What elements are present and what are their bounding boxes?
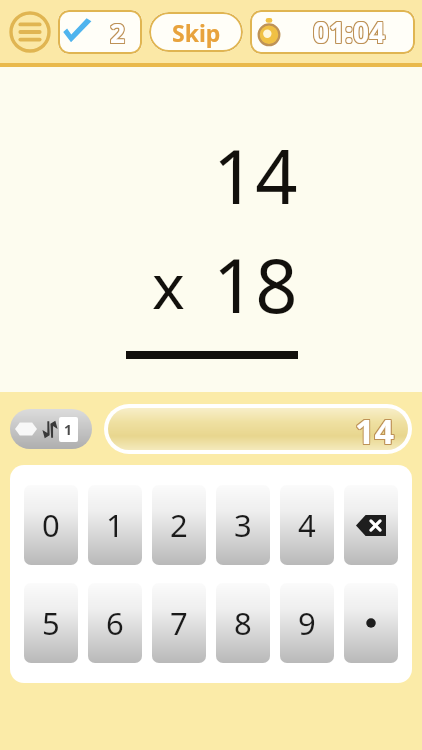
button[interactable]: 2 [58,10,142,54]
staticText: 14 [355,409,394,450]
button[interactable]: 4 [280,485,334,565]
button[interactable]: 7 [152,583,206,663]
staticText: 4 [298,504,316,546]
button[interactable]: 01:04 [250,10,415,54]
staticText: 14 [356,408,395,450]
staticText: 01:04 [313,12,385,50]
button[interactable]: Menu [7,9,53,55]
button[interactable]: 1 [88,485,142,565]
staticText: 1 [64,420,73,439]
button[interactable]: 6 [88,583,142,663]
staticText: 7 [170,602,188,644]
staticText: 2 [109,16,124,51]
staticText: 5 [42,602,60,644]
staticText: 14 [354,408,393,450]
staticText: 2 [110,14,125,49]
staticText: 2 [170,504,188,546]
staticText: 18 [213,234,298,335]
button[interactable]: 5 [24,583,78,663]
button[interactable]: 14 [108,408,408,450]
staticText: 01:04 [312,14,384,52]
staticText: 01:04 [313,13,385,51]
staticText: x [152,243,185,327]
staticText: 2 [111,15,126,50]
staticText: 2 [110,15,125,50]
staticText: 01:04 [314,13,386,51]
staticText: 8 [234,602,252,644]
staticText: 14 [213,125,298,226]
staticText: 2 [111,14,126,49]
staticText: 2 [109,14,124,49]
staticText: 01:04 [314,12,386,50]
staticText: 2 [109,15,124,50]
button[interactable]: Swap input mode [10,409,92,449]
staticText: 14 [355,408,394,450]
button[interactable]: 8 [216,583,270,663]
staticText: 01:04 [312,12,384,50]
staticText: 14 [354,408,393,449]
staticText: 0 [42,504,60,546]
button[interactable]: 2 [152,485,206,565]
staticText: 14 [356,409,395,450]
staticText: 14 [355,408,394,449]
staticText: 3 [234,504,252,546]
staticText: 9 [298,602,316,644]
staticText: 01:04 [312,13,384,51]
staticText: 14 [354,409,393,450]
staticText: 2 [111,16,126,51]
staticText: 1 [106,504,124,546]
staticText: 14 [356,408,395,449]
staticText: 2 [110,16,125,51]
button[interactable]: 3 [216,485,270,565]
button[interactable] [344,583,398,663]
button[interactable]: 0 [24,485,78,565]
staticText: 01:04 [313,14,385,52]
staticText: 01:04 [314,14,386,52]
button[interactable]: 9 [280,583,334,663]
button[interactable]: Skip [149,12,243,52]
button[interactable]: Backspace [344,485,398,565]
staticText: Skip [172,17,221,48]
staticText: 6 [106,602,124,644]
